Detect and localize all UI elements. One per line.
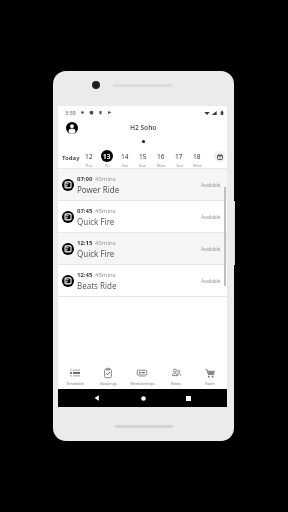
- button[interactable]: 14: [116, 147, 134, 168]
- staticText: 45mins: [95, 271, 116, 279]
- staticText: Fri: [105, 163, 110, 168]
- staticText: 16: [157, 152, 165, 161]
- staticText: 12:45: [77, 271, 93, 279]
- button[interactable]: 12:15: [58, 233, 227, 264]
- button[interactable]: 18: [188, 147, 206, 168]
- staticText: Available: [201, 246, 221, 252]
- staticText: 13: [103, 152, 111, 161]
- staticText: Beats Ride: [77, 280, 117, 291]
- staticText: 45mins: [95, 207, 116, 215]
- button[interactable]: 17: [170, 147, 188, 168]
- button[interactable]: Back: [90, 391, 104, 405]
- staticText: Memberships: [130, 381, 155, 386]
- staticText: 15: [139, 152, 147, 161]
- button[interactable]: 12:45: [58, 265, 227, 296]
- staticText: 18: [193, 152, 201, 161]
- staticText: Sun: [139, 163, 147, 168]
- button[interactable]: Timetable: [58, 364, 91, 386]
- staticText: Wed: [193, 163, 202, 168]
- button[interactable]: 13: [98, 147, 116, 168]
- staticText: Available: [201, 214, 221, 220]
- staticText: Available: [201, 278, 221, 284]
- staticText: 14: [121, 152, 129, 161]
- staticText: 12: [85, 152, 93, 161]
- button[interactable]: Home: [136, 391, 150, 405]
- staticText: Available: [201, 182, 221, 188]
- button[interactable]: 07:00: [58, 169, 227, 200]
- staticText: Sat: [122, 163, 128, 168]
- staticText: Tue: [176, 163, 183, 168]
- staticText: Quick Fire: [77, 216, 115, 227]
- staticText: Quick Fire: [77, 248, 115, 259]
- staticText: 45mins: [95, 239, 116, 247]
- staticText: 3:55: [65, 109, 76, 116]
- button[interactable]: Store: [193, 364, 227, 386]
- staticText: Mon: [157, 163, 166, 168]
- staticText: 12:15: [77, 239, 93, 247]
- button[interactable]: Open calendar: [214, 151, 225, 162]
- staticText: 07:00: [77, 175, 93, 183]
- button[interactable]: News: [159, 364, 193, 386]
- staticText: 07:45: [77, 207, 93, 215]
- staticText: Today: [62, 154, 80, 162]
- staticText: Thu: [85, 163, 93, 168]
- staticText: Timetable: [66, 381, 84, 386]
- button[interactable]: Recent apps: [181, 391, 195, 405]
- staticText: Bookings: [100, 381, 117, 386]
- staticText: Store: [205, 381, 215, 386]
- button[interactable]: Memberships: [125, 364, 159, 386]
- button[interactable]: 12: [80, 147, 98, 168]
- button[interactable]: 07:45: [58, 201, 227, 232]
- button[interactable]: 16: [152, 147, 170, 168]
- staticText: News: [171, 381, 181, 386]
- button[interactable]: Bookings: [91, 364, 125, 386]
- button[interactable]: 15: [134, 147, 152, 168]
- staticText: H2 Soho: [130, 123, 157, 132]
- button[interactable]: Profile: [66, 122, 78, 134]
- staticText: Power Ride: [77, 184, 120, 195]
- staticText: 17: [175, 152, 183, 161]
- staticText: 45mins: [95, 175, 116, 183]
